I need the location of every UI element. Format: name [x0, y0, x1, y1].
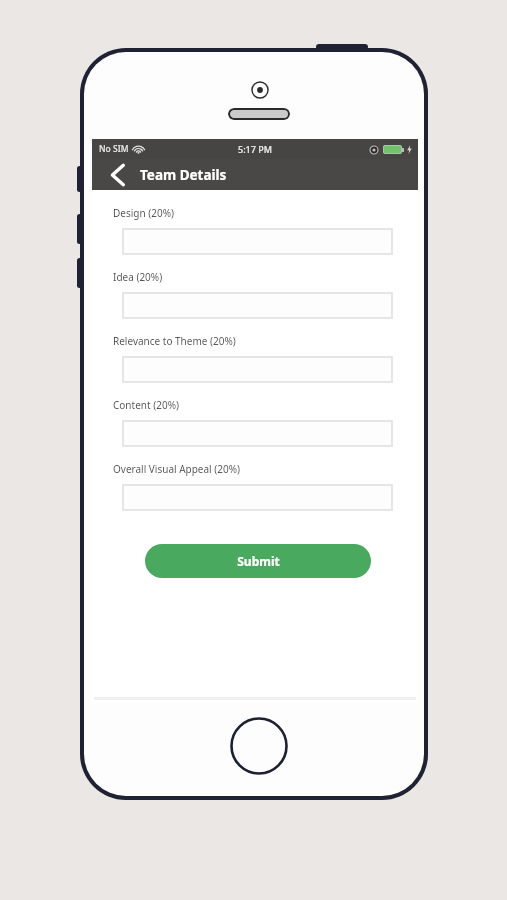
button[interactable] [122, 420, 393, 447]
staticText: Overall Visual Appeal (20%) [113, 462, 241, 476]
button[interactable]: Back [106, 162, 130, 188]
button[interactable] [122, 484, 393, 511]
button[interactable]: Submit [145, 544, 371, 578]
button[interactable] [122, 356, 393, 383]
staticText: Relevance to Theme (20%) [113, 334, 236, 348]
staticText: No SIM [99, 143, 129, 155]
staticText: 5:17 PM [238, 143, 272, 155]
staticText: Content (20%) [113, 398, 179, 412]
staticText: Submit [237, 553, 280, 569]
staticText: Team Details [140, 166, 227, 184]
staticText: Design (20%) [113, 206, 174, 220]
staticText: Idea (20%) [113, 270, 163, 284]
button[interactable] [122, 292, 393, 319]
button[interactable] [122, 228, 393, 255]
